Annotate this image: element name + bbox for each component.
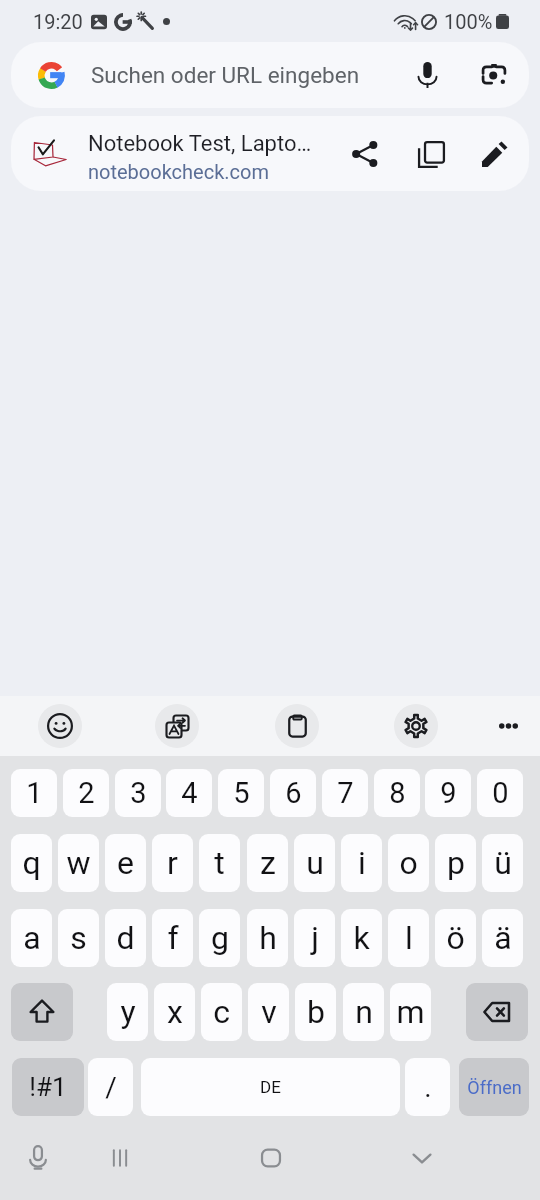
button[interactable]: Edit	[473, 132, 517, 176]
button[interactable]: u	[294, 834, 335, 892]
staticText: 8	[389, 776, 406, 810]
button[interactable]: r	[152, 834, 193, 892]
button[interactable]: 8	[374, 769, 420, 817]
button[interactable]: Share	[343, 132, 387, 176]
button[interactable]: a	[11, 909, 52, 967]
button[interactable]: /	[88, 1058, 133, 1116]
staticText: ä	[494, 919, 512, 957]
staticText: 1	[26, 776, 43, 810]
staticText: q	[22, 844, 41, 882]
staticText: x	[167, 993, 183, 1031]
button[interactable]: v	[248, 983, 289, 1041]
button[interactable]: 0	[477, 769, 523, 817]
staticText: 0	[492, 776, 509, 810]
staticText: !#1	[29, 1072, 67, 1102]
staticText: ö	[446, 919, 465, 957]
staticText: c	[213, 993, 230, 1031]
button[interactable]: Translate	[155, 704, 199, 748]
button[interactable]: y	[107, 983, 148, 1041]
staticText: o	[399, 844, 418, 882]
staticText: l	[405, 919, 413, 957]
staticText: 19:20	[33, 10, 83, 33]
staticText: u	[306, 844, 324, 882]
button[interactable]: Backspace	[466, 983, 528, 1041]
button[interactable]: n	[343, 983, 384, 1041]
button[interactable]: !#1	[12, 1058, 84, 1116]
button[interactable]: Settings	[394, 704, 438, 748]
staticText: g	[211, 919, 229, 957]
button[interactable]: i	[341, 834, 382, 892]
button[interactable]: Notebook Test, Lapto…	[11, 116, 529, 191]
button[interactable]: Shift	[11, 983, 73, 1041]
staticText: 100%	[444, 10, 493, 33]
button[interactable]: c	[201, 983, 242, 1041]
button[interactable]: z	[247, 834, 288, 892]
staticText: v	[261, 993, 277, 1031]
staticText: ü	[494, 844, 512, 882]
button[interactable]: 2	[63, 769, 109, 817]
staticText: w	[66, 844, 91, 882]
button[interactable]: Clipboard	[275, 704, 319, 748]
staticText: Suchen oder URL eingeben	[91, 62, 360, 88]
button[interactable]: d	[105, 909, 146, 967]
staticText: 3	[130, 776, 147, 810]
button[interactable]: ö	[435, 909, 476, 967]
button[interactable]: s	[58, 909, 99, 967]
staticText: i	[358, 844, 366, 882]
button[interactable]: Suchen oder URL eingeben	[11, 42, 529, 108]
button[interactable]: Home	[225, 1116, 316, 1200]
staticText: d	[116, 919, 135, 957]
button[interactable]: .	[405, 1058, 450, 1116]
button[interactable]: Google Lens	[471, 52, 517, 98]
button[interactable]: p	[435, 834, 476, 892]
button[interactable]: ä	[482, 909, 523, 967]
button[interactable]: b	[295, 983, 336, 1041]
button[interactable]: k	[341, 909, 382, 967]
button[interactable]: 3	[115, 769, 161, 817]
staticText: e	[117, 844, 134, 882]
staticText: 4	[181, 776, 198, 810]
button[interactable]: g	[199, 909, 240, 967]
staticText: .	[424, 1071, 432, 1104]
staticText: p	[447, 844, 465, 882]
button[interactable]: Hide keyboard	[377, 1116, 467, 1200]
button[interactable]: 9	[425, 769, 471, 817]
button[interactable]: Copy	[409, 132, 453, 176]
staticText: y	[120, 993, 136, 1031]
button[interactable]: e	[105, 834, 146, 892]
button[interactable]: Recents	[75, 1116, 164, 1200]
button[interactable]: More options	[486, 704, 530, 748]
button[interactable]: 4	[166, 769, 212, 817]
staticText: s	[70, 919, 87, 957]
button[interactable]: f	[152, 909, 193, 967]
button[interactable]: o	[388, 834, 429, 892]
button[interactable]: 5	[218, 769, 264, 817]
button[interactable]: Voice search	[404, 52, 450, 98]
button[interactable]: DE	[141, 1058, 400, 1116]
button[interactable]: Öffnen	[459, 1058, 529, 1116]
button[interactable]: l	[388, 909, 429, 967]
staticText: b	[307, 993, 325, 1031]
button[interactable]: j	[294, 909, 335, 967]
staticText: notebookcheck.com	[88, 160, 269, 183]
button[interactable]: m	[390, 983, 431, 1041]
staticText: Öffnen	[467, 1077, 522, 1098]
staticText: r	[167, 844, 178, 882]
button[interactable]: 6	[270, 769, 316, 817]
staticText: a	[23, 919, 41, 957]
button[interactable]: ü	[482, 834, 523, 892]
button[interactable]: w	[58, 834, 99, 892]
staticText: t	[214, 844, 225, 882]
staticText: 5	[233, 776, 250, 810]
button[interactable]: Emoji	[38, 704, 82, 748]
button[interactable]: q	[11, 834, 52, 892]
button[interactable]: h	[247, 909, 288, 967]
button[interactable]: 1	[11, 769, 57, 817]
staticText: j	[311, 919, 319, 957]
button[interactable]: x	[154, 983, 195, 1041]
staticText: 9	[440, 776, 457, 810]
button[interactable]: Voice input	[0, 1116, 75, 1200]
button[interactable]: t	[199, 834, 240, 892]
button[interactable]: 7	[322, 769, 368, 817]
staticText: h	[259, 919, 277, 957]
